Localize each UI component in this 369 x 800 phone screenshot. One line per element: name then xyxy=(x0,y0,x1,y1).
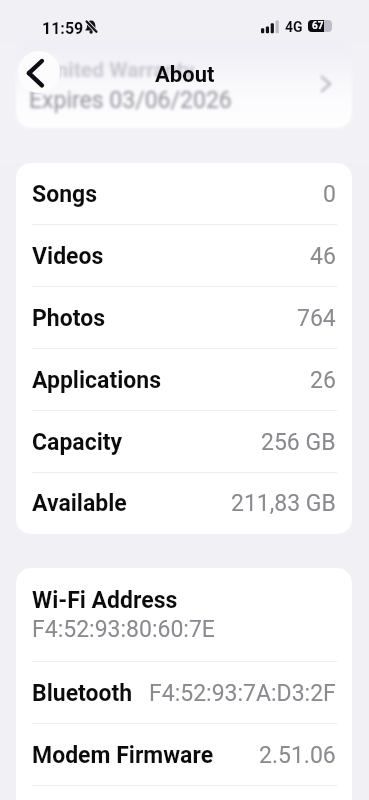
staticText: 2.51.06 xyxy=(259,742,336,769)
staticText: 4G xyxy=(285,19,303,35)
staticText: Songs xyxy=(32,181,98,208)
button[interactable]: Modem Firmware xyxy=(16,724,352,786)
button[interactable]: Applications xyxy=(16,349,352,411)
staticText: Photos xyxy=(32,305,106,332)
staticText: Expires 03/06/2026 xyxy=(29,87,232,114)
staticText: Wi-Fi Address xyxy=(32,587,178,614)
staticText: 26 xyxy=(310,367,336,394)
staticText: Available xyxy=(32,490,127,517)
staticText: 67 xyxy=(312,20,324,32)
button[interactable]: Capacity xyxy=(16,411,352,473)
button[interactable]: Photos xyxy=(16,287,352,349)
staticText: 211,83 GB xyxy=(231,490,336,517)
staticText: 46 xyxy=(310,243,336,270)
button[interactable]: Back xyxy=(18,51,60,93)
staticText: Limited Warranty xyxy=(33,58,195,83)
staticText: 256 GB xyxy=(261,429,336,456)
staticText: 0 xyxy=(323,181,336,208)
staticText: Videos xyxy=(32,243,104,270)
button[interactable]: Songs xyxy=(16,163,352,225)
button[interactable]: Wi-Fi Address xyxy=(16,568,352,662)
staticText: Bluetooth xyxy=(32,680,133,707)
staticText: F4:52:93:80:60:7E xyxy=(32,616,215,643)
staticText: Capacity xyxy=(32,429,123,456)
button[interactable]: Bluetooth xyxy=(16,662,352,724)
staticText: 11:59 xyxy=(42,19,84,38)
staticText: 764 xyxy=(297,305,336,332)
staticText: Modem Firmware xyxy=(32,742,214,769)
staticText: F4:52:93:7A:D3:2F xyxy=(149,680,336,707)
staticText: About xyxy=(155,62,215,88)
button[interactable]: Videos xyxy=(16,225,352,287)
button[interactable]: Available xyxy=(16,473,352,534)
staticText: Applications xyxy=(32,367,161,394)
